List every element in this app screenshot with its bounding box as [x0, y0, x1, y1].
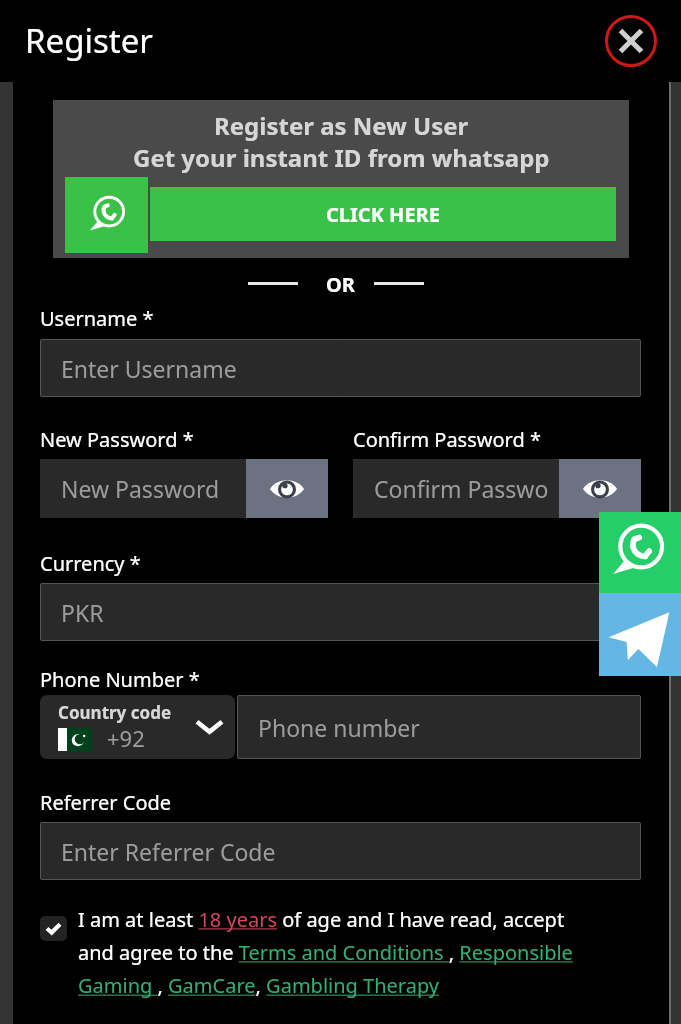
staticText: Referrer Code — [40, 789, 172, 816]
staticText: Register — [25, 18, 153, 63]
staticText: Currency * — [40, 550, 141, 577]
staticText: Register as New User — [214, 109, 469, 142]
staticText: Enter Referrer Code — [61, 836, 276, 867]
staticText: Get your instant ID from whatsapp — [133, 141, 550, 174]
staticText: Country code — [58, 701, 172, 724]
staticText: Username * — [40, 305, 154, 332]
staticText: PKR — [61, 597, 104, 628]
staticText: Confirm Passwo — [374, 473, 549, 504]
button[interactable]: WhatsApp — [65, 177, 148, 253]
staticText: I am at least 18 years of age and I have… — [78, 906, 603, 999]
staticText: Enter Username — [61, 353, 237, 384]
button[interactable]: WhatsApp — [599, 512, 681, 593]
button[interactable]: Confirm Passwo — [353, 459, 559, 518]
button[interactable]: Enter Referrer Code — [40, 822, 641, 880]
staticText: +92 — [107, 723, 145, 753]
button[interactable]: New Password — [40, 459, 246, 518]
button[interactable]: PKR — [40, 583, 641, 641]
staticText: CLICK HERE — [326, 201, 440, 228]
button[interactable]: Close — [605, 15, 657, 67]
staticText: Phone Number * — [40, 666, 200, 693]
button[interactable]: Show password — [246, 459, 328, 518]
button[interactable]: Show password — [559, 459, 641, 518]
staticText: New Password — [61, 473, 220, 504]
button[interactable]: Phone number — [237, 695, 641, 759]
button[interactable]: Accept terms — [40, 916, 67, 941]
staticText: New Password * — [40, 426, 194, 453]
staticText: OR — [326, 271, 355, 298]
button[interactable]: Country code — [40, 695, 235, 759]
button[interactable]: CLICK HERE — [150, 187, 616, 241]
button[interactable]: Enter Username — [40, 339, 641, 397]
button[interactable]: Telegram — [599, 593, 681, 676]
staticText: Confirm Password * — [353, 426, 541, 453]
staticText: Phone number — [258, 712, 420, 743]
